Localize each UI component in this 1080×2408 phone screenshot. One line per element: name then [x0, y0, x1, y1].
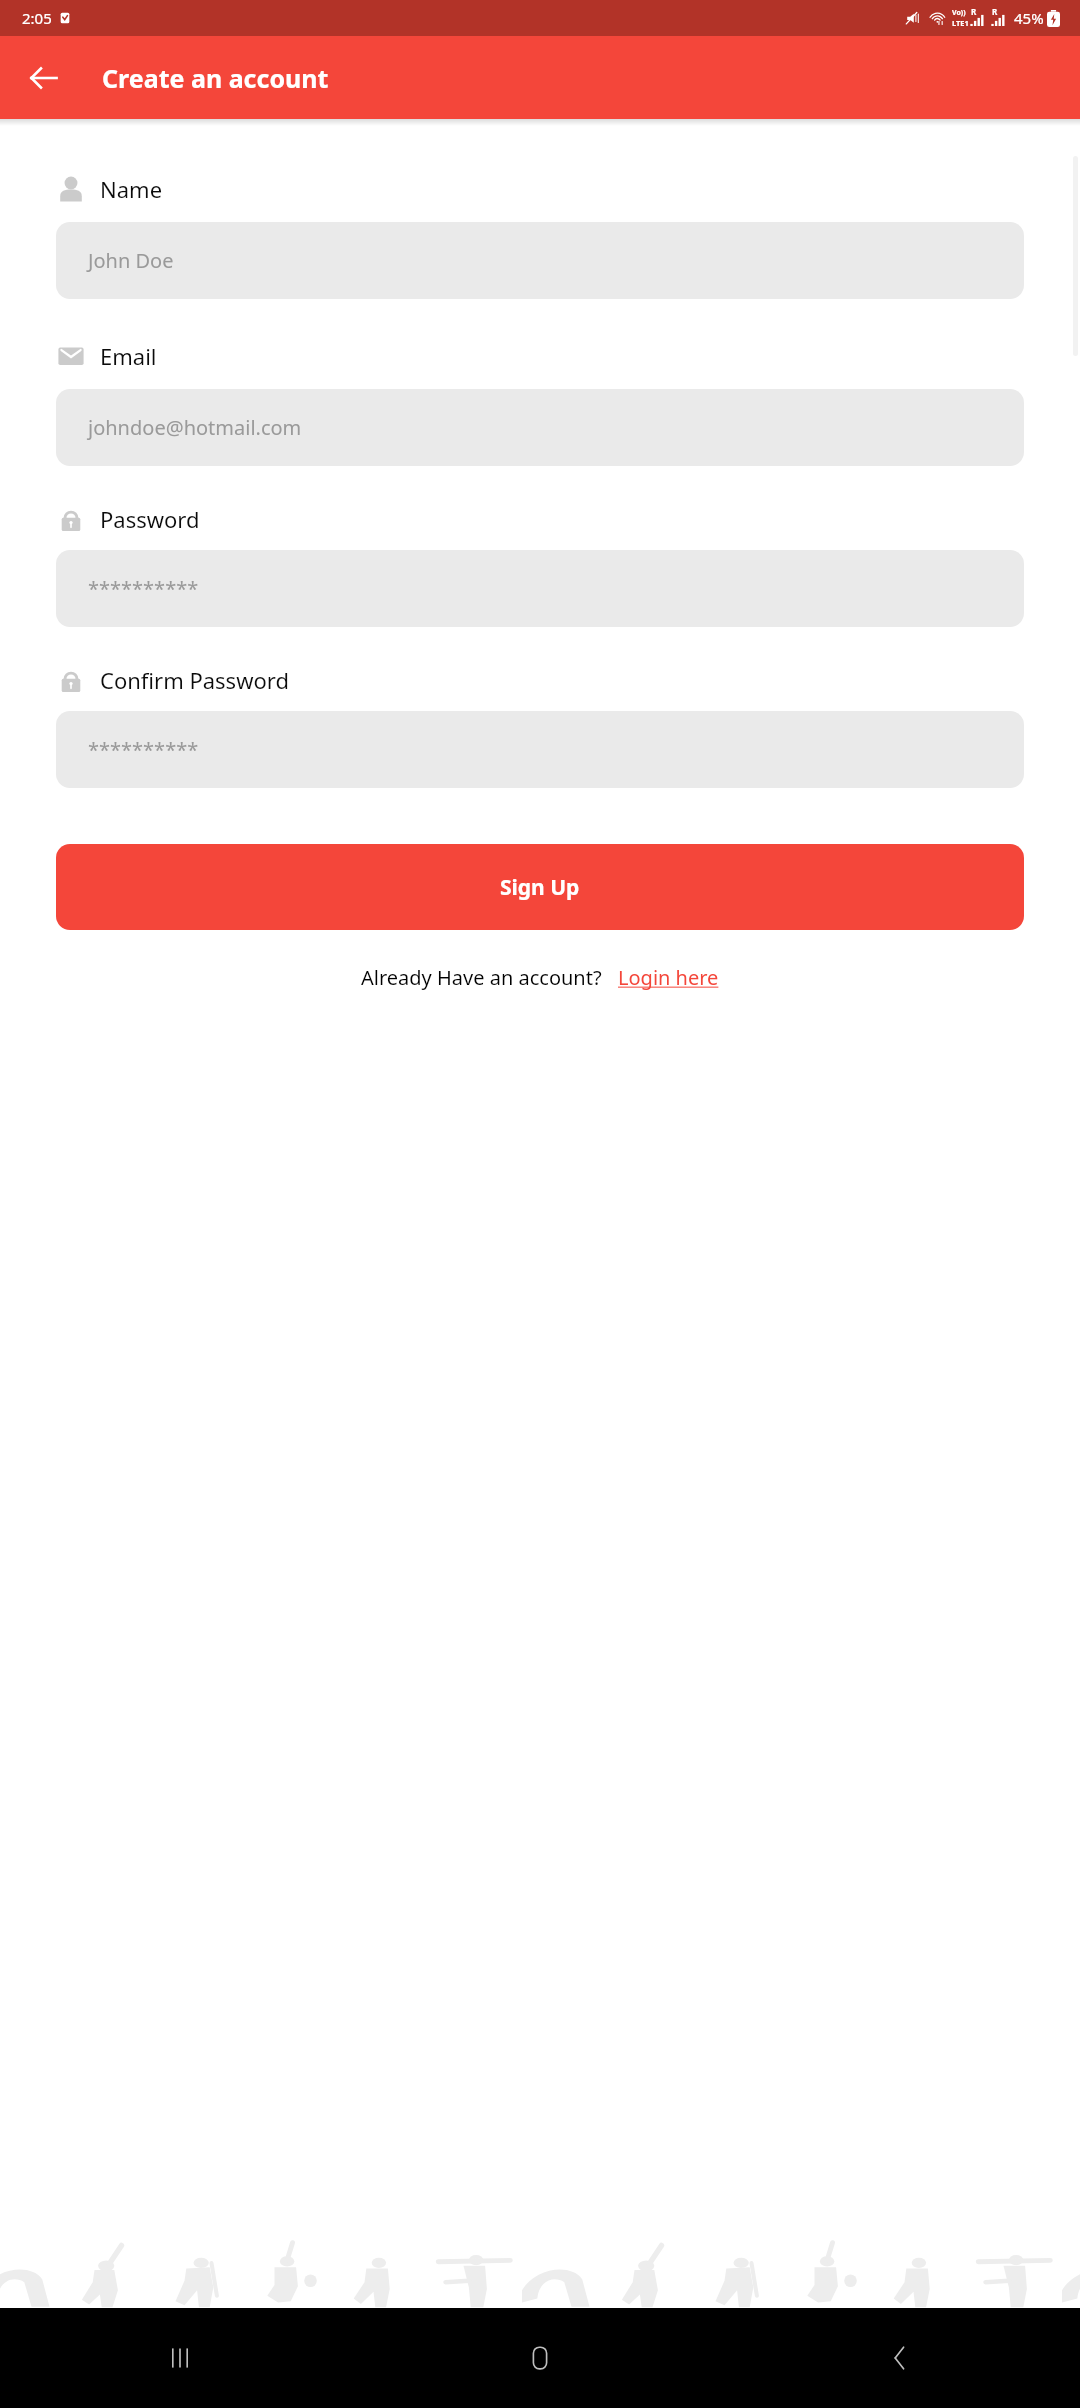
- staticText: John Doe: [88, 247, 174, 274]
- button[interactable]: **********: [56, 550, 1024, 627]
- staticText: Already Have an account?: [361, 964, 602, 991]
- button[interactable]: Recents: [148, 2326, 212, 2390]
- button[interactable]: Back: [868, 2326, 932, 2390]
- staticText: 45%: [1014, 8, 1044, 28]
- staticText: R: [971, 6, 977, 17]
- button[interactable]: Login here: [618, 964, 719, 991]
- staticText: Vo)): [952, 8, 966, 18]
- staticText: Name: [100, 174, 163, 204]
- button[interactable]: johndoe@hotmail.com: [56, 389, 1024, 466]
- button[interactable]: Home: [508, 2326, 572, 2390]
- staticText: Email: [100, 341, 157, 371]
- staticText: Create an account: [102, 61, 329, 95]
- button[interactable]: Sign Up: [56, 844, 1024, 930]
- button[interactable]: Back: [16, 50, 72, 106]
- staticText: Login here: [618, 964, 719, 991]
- staticText: Sign Up: [500, 873, 580, 902]
- button[interactable]: John Doe: [56, 222, 1024, 299]
- staticText: LTE1: [952, 18, 969, 28]
- button[interactable]: **********: [56, 711, 1024, 788]
- staticText: R: [992, 6, 998, 17]
- staticText: Confirm Password: [100, 665, 289, 695]
- staticText: Password: [100, 504, 200, 534]
- staticText: johndoe@hotmail.com: [88, 414, 302, 441]
- staticText: **********: [88, 575, 199, 602]
- staticText: **********: [88, 736, 199, 763]
- staticText: 2:05: [22, 8, 52, 28]
